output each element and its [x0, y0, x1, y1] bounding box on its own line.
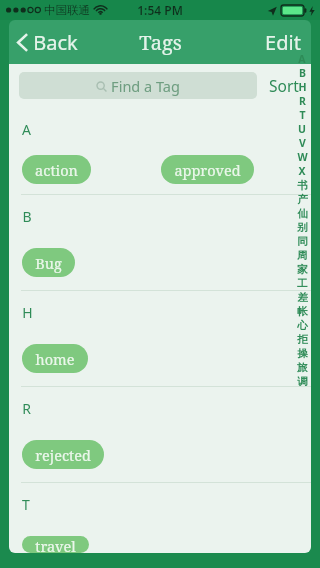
staticText: Sort	[269, 75, 299, 96]
button[interactable]: Find a Tag	[19, 72, 257, 99]
staticText: 心	[297, 319, 308, 332]
staticText: Find a Tag	[111, 76, 180, 96]
staticText: approved	[174, 160, 241, 180]
button[interactable]: Section index	[294, 52, 310, 388]
staticText: rejected	[35, 445, 91, 465]
button[interactable]: approved	[161, 155, 254, 184]
button[interactable]: home	[22, 344, 88, 373]
staticText: 周	[297, 249, 308, 262]
staticText: U	[298, 122, 306, 136]
staticText: 旅	[297, 361, 308, 374]
staticText: B	[299, 66, 306, 80]
staticText: 书	[297, 179, 308, 192]
staticText: Bug	[35, 253, 62, 273]
staticText: T	[299, 108, 306, 122]
button[interactable]: rejected	[22, 440, 104, 469]
staticText: 中国联通	[44, 3, 90, 17]
staticText: Edit	[265, 29, 301, 56]
staticText: home	[35, 349, 75, 369]
staticText: 1:54 PM	[137, 2, 183, 18]
staticText: X	[298, 164, 306, 178]
staticText: H	[22, 303, 33, 322]
button[interactable]: travel	[22, 536, 89, 553]
staticText: R	[22, 399, 31, 418]
staticText: A	[22, 120, 31, 139]
button[interactable]: Bug	[22, 248, 75, 277]
button[interactable]: Back	[9, 23, 88, 62]
staticText: V	[299, 136, 306, 150]
button[interactable]: action	[22, 155, 91, 184]
staticText: H	[298, 80, 307, 94]
staticText: action	[35, 160, 78, 180]
staticText: 工	[297, 277, 308, 290]
staticText: 拒	[297, 333, 308, 346]
staticText: Tags	[139, 29, 182, 56]
staticText: 帐	[297, 305, 308, 318]
staticText: 产	[297, 193, 308, 206]
staticText: Back	[33, 29, 78, 56]
staticText: 仙	[297, 207, 308, 220]
staticText: 家	[297, 263, 308, 276]
staticText: 同	[297, 235, 308, 248]
staticText: T	[22, 495, 30, 514]
staticText: 调	[297, 375, 308, 388]
button[interactable]: Sort	[257, 67, 311, 104]
staticText: 别	[297, 221, 308, 234]
staticText: A	[298, 52, 306, 66]
staticText: travel	[35, 536, 76, 553]
button[interactable]: Edit	[255, 21, 311, 64]
staticText: B	[22, 207, 32, 226]
staticText: 操	[297, 347, 308, 360]
staticText: W	[297, 150, 308, 164]
staticText: 差	[297, 291, 308, 304]
staticText: R	[299, 94, 306, 108]
